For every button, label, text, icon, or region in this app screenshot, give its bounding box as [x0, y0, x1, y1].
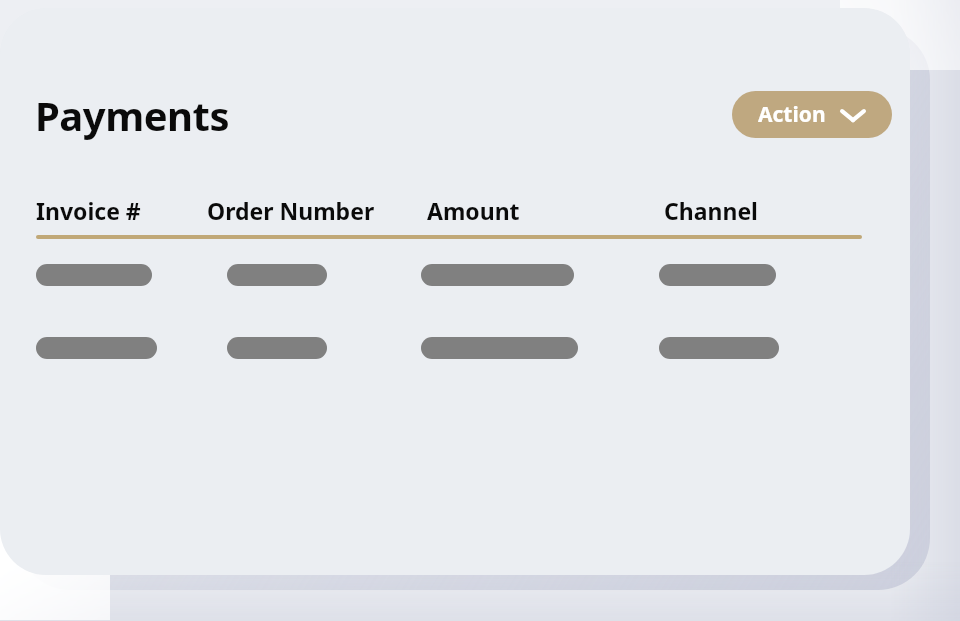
staticText: Channel [664, 195, 758, 226]
button[interactable]: Action [732, 91, 892, 138]
other: Expand actions [840, 107, 866, 123]
staticText: Order Number [207, 195, 375, 226]
staticText: Payments [35, 88, 229, 142]
staticText: Invoice # [36, 195, 141, 226]
staticText: Amount [427, 195, 520, 226]
staticText: Action [758, 100, 826, 129]
